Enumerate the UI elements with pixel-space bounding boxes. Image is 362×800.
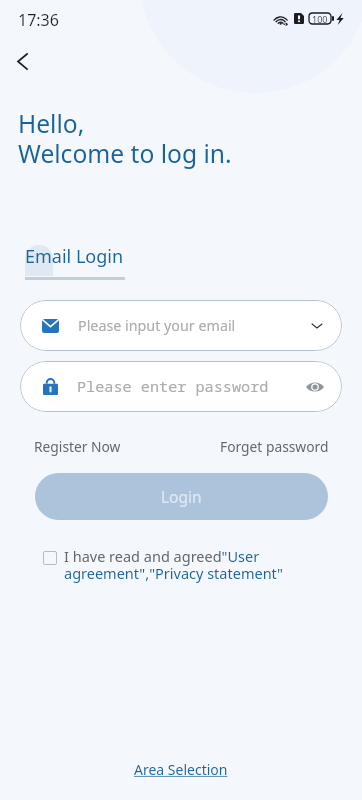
staticText: Login <box>161 486 202 507</box>
staticText: 17:36 <box>18 9 59 31</box>
staticText: Area Selection <box>134 760 228 779</box>
staticText: Please input your email <box>78 316 236 335</box>
button[interactable]: Please enter password <box>20 361 342 412</box>
button[interactable]: I have read and agreed"User agreement","… <box>64 546 286 583</box>
staticText: Welcome to log in. <box>18 137 232 171</box>
staticText: Forget password <box>220 437 329 456</box>
staticText: 100 <box>312 13 328 24</box>
button[interactable]: Show password <box>302 374 328 400</box>
button[interactable]: Agree to user agreement <box>43 551 57 565</box>
button[interactable]: Login <box>35 473 328 520</box>
button[interactable]: Area Selection <box>130 758 232 781</box>
button[interactable]: Forget password <box>219 435 330 458</box>
staticText: Please enter password <box>77 376 269 397</box>
button[interactable]: Please input your email <box>20 300 342 351</box>
staticText: Hello, <box>18 107 85 141</box>
button[interactable]: Choose email <box>304 313 330 339</box>
button[interactable] <box>21 240 129 280</box>
button[interactable]: Back <box>4 43 40 79</box>
button[interactable]: Register Now <box>33 435 122 458</box>
staticText: Email Login <box>25 244 124 269</box>
staticText: Register Now <box>34 437 121 456</box>
